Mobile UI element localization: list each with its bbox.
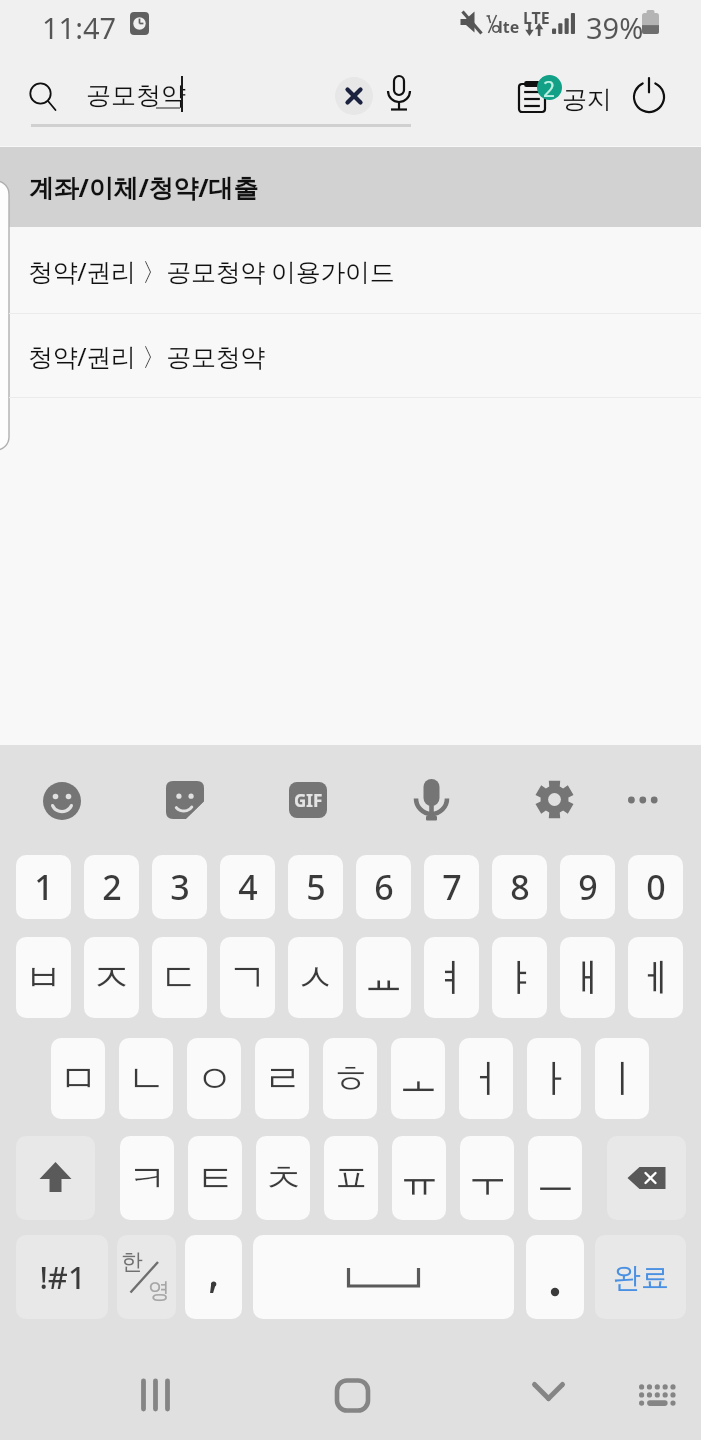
staticText: 청약/권리 〉공모청약 이용가이드 (28, 254, 395, 288)
button[interactable]: ㅇ (187, 1038, 241, 1119)
staticText: ㅜ (468, 1154, 507, 1203)
button[interactable]: ㅅ (288, 937, 343, 1018)
button[interactable]: Home (330, 1374, 375, 1419)
staticText: ㄱ (228, 953, 267, 1002)
staticText: 11:47 (42, 8, 117, 47)
button[interactable]: 완료 (595, 1235, 686, 1319)
button[interactable]: ㄴ (119, 1038, 173, 1119)
button[interactable]: ㅠ (392, 1136, 446, 1220)
staticText: ㅕ (432, 953, 471, 1002)
button[interactable]: ㅡ (528, 1136, 582, 1220)
staticText: 2 (543, 75, 556, 100)
button[interactable]: 2 (518, 72, 612, 104)
button[interactable]: ㅜ (460, 1136, 514, 1220)
button[interactable]: ㅐ (560, 937, 615, 1018)
staticText: ㅔ (636, 953, 675, 1002)
staticText: ㅡ (536, 1154, 575, 1203)
button[interactable]: ㅔ (628, 937, 683, 1018)
staticText: ㄹ (263, 1054, 302, 1103)
button[interactable]: Stickers (166, 781, 204, 819)
button[interactable]: ㅛ (356, 937, 411, 1018)
staticText: ㅛ (364, 953, 403, 1002)
button[interactable]: 8 (492, 855, 547, 919)
button[interactable]: Power (632, 78, 666, 112)
button[interactable]: Change keyboard (637, 1381, 679, 1409)
staticText: ㅁ (59, 1054, 98, 1103)
button[interactable]: !#1 (16, 1235, 108, 1319)
staticText: lte (498, 16, 520, 38)
button[interactable]: Backspace (607, 1136, 686, 1220)
button[interactable]: Comma (185, 1235, 242, 1319)
button[interactable]: Recent apps (131, 1373, 181, 1413)
button[interactable]: Hide keyboard (526, 1374, 571, 1419)
button[interactable]: 4 (220, 855, 275, 919)
button[interactable]: ㅗ (391, 1038, 445, 1119)
staticText: 4 (238, 864, 258, 910)
staticText: 3 (170, 864, 190, 910)
staticText: 영 (148, 1277, 170, 1305)
button[interactable]: ㅑ (492, 937, 547, 1018)
staticText: 2 (102, 864, 122, 910)
staticText: ㅓ (467, 1054, 506, 1103)
staticText: ㄷ (160, 953, 199, 1002)
button[interactable]: Clear (335, 77, 373, 115)
staticText: 6 (374, 864, 394, 910)
button[interactable]: ㅕ (424, 937, 479, 1018)
staticText: ㅏ (535, 1054, 574, 1103)
button[interactable]: ㅍ (324, 1136, 378, 1220)
button[interactable]: ㅁ (51, 1038, 105, 1119)
button[interactable]: ㅎ (323, 1038, 377, 1119)
button[interactable]: 1 (16, 855, 71, 919)
button[interactable]: 청약/권리 〉공모청약 (9, 314, 701, 398)
button[interactable]: Voice search (383, 74, 415, 116)
button[interactable]: Space (253, 1235, 514, 1319)
button[interactable]: Settings (535, 780, 574, 819)
button[interactable]: 6 (356, 855, 411, 919)
button[interactable]: ㅏ (527, 1038, 581, 1119)
staticText: ㅐ (568, 953, 607, 1002)
staticText: ㅠ (400, 1154, 439, 1203)
staticText: ㅣ (603, 1054, 642, 1103)
staticText: ㅈ (92, 953, 131, 1002)
staticText: ㅅ (296, 953, 335, 1002)
button[interactable]: ㅈ (84, 937, 139, 1018)
button[interactable]: Voice input (414, 779, 449, 821)
button[interactable]: 9 (560, 855, 615, 919)
button[interactable]: 계좌/이체/청약/대출 (9, 147, 701, 227)
button[interactable]: ㄱ (220, 937, 275, 1018)
button[interactable]: 7 (424, 855, 479, 919)
staticText: 한 (121, 1248, 143, 1276)
staticText: ㅍ (332, 1154, 371, 1203)
button[interactable]: 청약/권리 〉공모청약 이용가이드 (9, 227, 701, 314)
button[interactable]: ㅊ (256, 1136, 310, 1220)
button[interactable]: 3 (152, 855, 207, 919)
button[interactable]: 5 (288, 855, 343, 919)
button[interactable]: Language (117, 1235, 176, 1319)
staticText: ㅊ (264, 1154, 303, 1203)
staticText: 계좌/이체/청약/대출 (29, 170, 258, 204)
button[interactable]: ㅋ (120, 1136, 174, 1220)
button[interactable]: ㅣ (595, 1038, 649, 1119)
button[interactable]: 2 (84, 855, 139, 919)
button[interactable]: ㅂ (16, 937, 71, 1018)
staticText: 9 (578, 864, 598, 910)
staticText: !#1 (39, 1256, 86, 1298)
staticText: ㅂ (24, 953, 63, 1002)
button[interactable]: GIF (289, 782, 327, 818)
staticText: ㄴ (127, 1054, 166, 1103)
button[interactable]: Shift (16, 1136, 95, 1220)
staticText: ㅎ (331, 1054, 370, 1103)
button[interactable]: Period (526, 1235, 584, 1319)
button[interactable]: More options (628, 789, 661, 811)
staticText: ㅗ (399, 1054, 438, 1103)
button[interactable]: ㄷ (152, 937, 207, 1018)
button[interactable]: ㄹ (255, 1038, 309, 1119)
button[interactable]: Emoji (43, 782, 81, 820)
staticText: 8 (510, 864, 530, 910)
button[interactable]: ㅌ (188, 1136, 242, 1220)
staticText: 공모청약 (86, 80, 186, 111)
staticText: ㅇ (195, 1054, 234, 1103)
button[interactable]: 0 (628, 855, 683, 919)
staticText: ㅌ (196, 1154, 235, 1203)
button[interactable]: ㅓ (459, 1038, 513, 1119)
